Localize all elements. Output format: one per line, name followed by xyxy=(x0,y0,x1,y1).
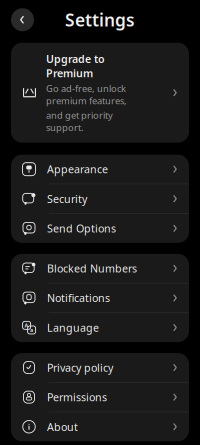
staticText: Privacy policy xyxy=(47,360,113,375)
staticText: Send Options xyxy=(47,221,116,235)
staticText: Upgrade to Premium xyxy=(46,52,105,80)
button[interactable]: Upgrade to Premium xyxy=(11,43,189,143)
staticText: A xyxy=(25,322,29,329)
button[interactable]: A xyxy=(11,313,189,342)
button[interactable]: About xyxy=(11,412,189,441)
button[interactable]: Security xyxy=(11,184,189,213)
staticText: and get priority support. xyxy=(46,109,113,134)
staticText: About xyxy=(47,420,78,434)
button[interactable]: Privacy policy xyxy=(11,353,189,382)
button[interactable]: Blocked Numbers xyxy=(11,254,189,283)
staticText: Go ad-free, unlock premium features, xyxy=(46,82,127,107)
staticText: a xyxy=(30,326,33,333)
staticText: Permissions xyxy=(47,390,107,404)
staticText: Notifications xyxy=(47,291,110,305)
staticText: Language xyxy=(47,320,99,335)
staticText: Blocked Numbers xyxy=(47,261,137,275)
button[interactable]: Back xyxy=(11,8,34,31)
staticText: Settings xyxy=(65,8,135,31)
staticText: Security xyxy=(47,192,87,206)
staticText: Appearance xyxy=(47,162,108,176)
button[interactable]: Appearance xyxy=(11,155,189,184)
button[interactable]: Send Options xyxy=(11,214,189,243)
button[interactable]: Permissions xyxy=(11,383,189,412)
button[interactable]: Notifications xyxy=(11,283,189,312)
